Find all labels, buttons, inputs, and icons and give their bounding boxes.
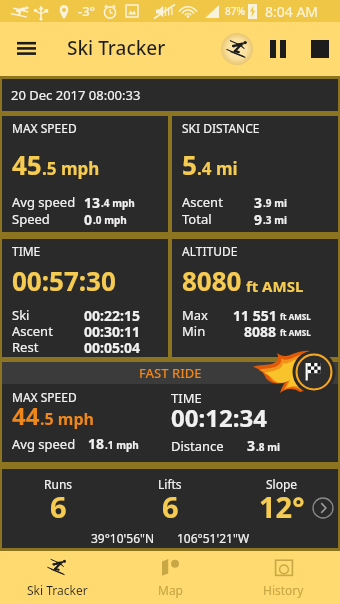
staticText: 00:12:34 [171, 401, 267, 434]
staticText: .1 mph [105, 438, 139, 452]
staticText: 45 [12, 147, 42, 182]
staticText: Map [158, 582, 183, 598]
staticText: Rest [12, 338, 39, 354]
button[interactable]: Ski Tracker [0, 551, 114, 604]
staticText: 0 [84, 210, 93, 227]
staticText: Distance [171, 437, 224, 455]
staticText: .3 mi [263, 213, 287, 227]
button[interactable]: History [227, 551, 340, 604]
staticText: -3° [78, 2, 96, 20]
staticText: Ski Tracker [67, 35, 166, 61]
staticText: SKI DISTANCE [182, 120, 260, 136]
staticText: 6 [162, 487, 179, 526]
staticText: MAX SPEED [12, 389, 77, 405]
staticText: FAST RIDE [139, 364, 202, 382]
staticText: Slope [266, 476, 298, 492]
staticText: 12° [259, 487, 305, 526]
staticText: 18 [88, 434, 105, 453]
staticText: 8080 [182, 263, 242, 298]
button[interactable]: Map [114, 551, 227, 604]
staticText: ft AMSL [280, 311, 311, 322]
staticText: TIME [171, 389, 202, 407]
staticText: 00:57:30 [12, 263, 116, 298]
staticText: 13 [84, 193, 101, 210]
staticText: MAX SPEED [12, 120, 77, 136]
staticText: 00:22:15 [84, 306, 140, 322]
staticText: 00:05:04 [84, 338, 140, 354]
staticText: 9 [254, 210, 263, 227]
other: More [312, 497, 334, 519]
staticText: 8:04 AM [265, 2, 319, 21]
staticText: Avg speed [12, 435, 76, 453]
staticText: .4 mph [101, 196, 135, 210]
button[interactable]: Menu [5, 22, 47, 76]
button[interactable]: Runs [2, 469, 338, 548]
staticText: 87% [225, 4, 245, 18]
staticText: .9 mi [263, 196, 287, 210]
staticText: 3 [247, 436, 256, 455]
staticText: 106°51'21"W [177, 530, 250, 546]
staticText: Min [182, 322, 206, 338]
button[interactable]: Start skiing [216, 22, 258, 76]
staticText: Runs [44, 476, 73, 492]
staticText: 20 Dec 2017 08:00:33 [11, 86, 141, 104]
staticText: ft AMSL [280, 327, 311, 338]
staticText: ft AMSL [242, 276, 304, 296]
staticText: History [263, 582, 304, 598]
staticText: 8088 [244, 322, 277, 338]
staticText: .4 mi [197, 157, 238, 180]
staticText: 11 551 [233, 306, 277, 322]
staticText: Ski [12, 306, 30, 322]
staticText: TIME [12, 243, 41, 259]
staticText: Avg speed [12, 193, 76, 210]
staticText: 39°10'56"N [91, 530, 155, 546]
button[interactable]: Stop [300, 22, 340, 76]
staticText: Ascent [182, 193, 223, 210]
staticText: .5 mph [40, 408, 94, 430]
staticText: Max [182, 306, 208, 322]
staticText: .5 mph [42, 157, 100, 180]
staticText: Speed [12, 210, 50, 227]
other: Fast ride badge [248, 350, 336, 394]
staticText: 6 [50, 487, 67, 526]
staticText: Total [182, 210, 212, 227]
staticText: ALTITUDE [182, 243, 238, 259]
button[interactable]: Pause [262, 22, 294, 76]
staticText: 3 [254, 193, 263, 210]
staticText: 44 [12, 399, 40, 432]
staticText: Lifts [158, 476, 182, 492]
staticText: Ascent [12, 322, 53, 338]
staticText: .0 mph [93, 213, 127, 227]
staticText: Ski Tracker [27, 582, 88, 598]
staticText: .8 mi [256, 440, 280, 454]
staticText: 00:30:11 [84, 322, 140, 338]
staticText: 5 [182, 147, 197, 182]
